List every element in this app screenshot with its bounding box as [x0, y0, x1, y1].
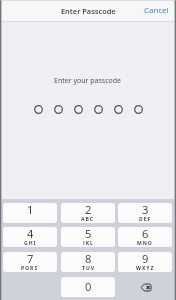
- staticText: PQRS: [21, 265, 39, 270]
- button[interactable]: 0: [61, 277, 115, 297]
- staticText: JKL: [83, 240, 94, 245]
- staticText: 5: [85, 227, 92, 241]
- staticText: ABC: [81, 216, 95, 221]
- button[interactable]: 2: [61, 203, 115, 223]
- staticText: DEF: [139, 216, 152, 221]
- button[interactable]: 5: [61, 227, 115, 247]
- staticText: 1: [27, 203, 34, 217]
- staticText: 2: [85, 203, 92, 217]
- staticText: 8: [85, 252, 92, 266]
- button[interactable]: 6: [118, 227, 172, 247]
- button[interactable]: 8: [61, 252, 115, 272]
- staticText: WXYZ: [136, 265, 155, 270]
- button[interactable]: 7: [3, 252, 57, 272]
- staticText: 9: [142, 252, 149, 266]
- staticText: TUV: [82, 265, 95, 270]
- button[interactable]: 3: [118, 203, 172, 223]
- staticText: 4: [27, 227, 34, 241]
- button[interactable]: Cancel: [136, 2, 176, 19]
- staticText: Cancel: [144, 5, 169, 16]
- staticText: 7: [27, 252, 34, 266]
- button[interactable]: Delete: [118, 277, 172, 297]
- button[interactable]: 1: [3, 203, 57, 223]
- staticText: 3: [142, 203, 149, 217]
- staticText: 0: [85, 279, 92, 294]
- button[interactable]: 9: [118, 252, 172, 272]
- staticText: Enter Passcode: [61, 6, 116, 16]
- staticText: GHI: [24, 240, 37, 245]
- button[interactable]: 4: [3, 227, 57, 247]
- staticText: Enter your passcode: [54, 76, 122, 86]
- staticText: 6: [142, 227, 149, 241]
- staticText: MNO: [137, 240, 153, 245]
